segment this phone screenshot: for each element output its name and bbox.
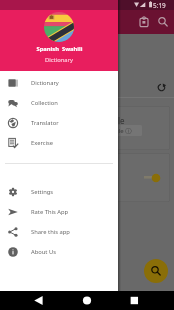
button[interactable]: Share this app (0, 222, 118, 242)
button[interactable]: Dictionary (0, 73, 118, 93)
button[interactable]: Settings (0, 182, 118, 202)
button[interactable]: About Us (0, 242, 118, 262)
button[interactable]: Clipboard (134, 10, 154, 34)
staticText: About Us (31, 248, 56, 256)
staticText: gle ⓘ (115, 127, 132, 135)
staticText: Exercise (31, 139, 54, 147)
staticText: Dictionary (31, 79, 59, 87)
button[interactable]: Exercise (0, 133, 118, 153)
button[interactable]: Search (144, 259, 168, 283)
button[interactable] (92, 153, 170, 202)
staticText: le (118, 115, 125, 126)
staticText: Spanish Swahili (36, 45, 83, 53)
button[interactable]: Rate This App (0, 202, 118, 222)
button[interactable]: Search (153, 10, 173, 34)
staticText: Share this app (31, 228, 70, 236)
staticText: Translator (31, 119, 59, 127)
button[interactable]: Refresh (153, 79, 169, 95)
button[interactable]: Collection (0, 93, 118, 113)
staticText: 5:19 (153, 1, 166, 10)
staticText: Collection (31, 99, 58, 107)
staticText: Settings (31, 188, 54, 196)
button[interactable]: le (92, 106, 170, 150)
button[interactable]: Translator (0, 113, 118, 133)
staticText: Rate This App (31, 208, 69, 216)
staticText: Dictionary (45, 56, 73, 64)
